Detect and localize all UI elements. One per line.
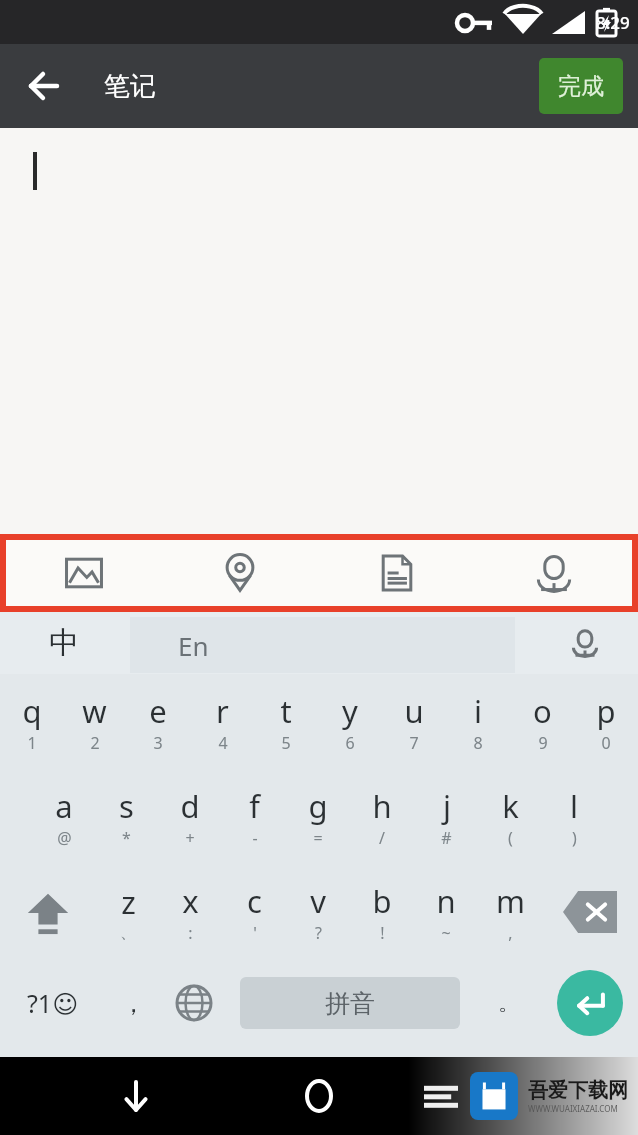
button[interactable]: z bbox=[96, 864, 159, 959]
staticText: 6 bbox=[345, 732, 355, 754]
button[interactable]: e bbox=[126, 674, 190, 769]
staticText: g bbox=[308, 785, 328, 827]
button[interactable]: Insert image bbox=[6, 540, 162, 606]
staticText: 0 bbox=[601, 732, 611, 754]
button[interactable]: 。 bbox=[478, 959, 540, 1047]
staticText: ! bbox=[380, 922, 385, 944]
staticText: d bbox=[180, 785, 200, 827]
staticText: ? bbox=[315, 922, 322, 944]
staticText: + bbox=[185, 827, 195, 849]
staticText: 。 bbox=[498, 989, 520, 1017]
staticText: w bbox=[82, 690, 107, 732]
staticText: v bbox=[310, 880, 326, 922]
staticText: 拼音 bbox=[325, 988, 375, 1019]
staticText: m bbox=[496, 880, 525, 922]
button[interactable]: m bbox=[478, 864, 542, 959]
staticText: n bbox=[436, 880, 456, 922]
button[interactable]: ， bbox=[98, 959, 168, 1047]
staticText: t bbox=[280, 690, 292, 732]
staticText: ~ bbox=[441, 922, 451, 944]
staticText: h bbox=[372, 785, 392, 827]
button[interactable]: Voice input bbox=[475, 540, 632, 606]
button[interactable]: Voice input bbox=[560, 618, 610, 668]
staticText: r bbox=[216, 690, 229, 732]
staticText: b bbox=[372, 880, 392, 922]
button[interactable]: n bbox=[414, 864, 478, 959]
button[interactable]: u bbox=[382, 674, 446, 769]
staticText: ?1☺ bbox=[27, 986, 79, 1020]
button[interactable]: Insert location bbox=[162, 540, 318, 606]
button[interactable]: 完成 bbox=[539, 58, 623, 114]
button[interactable]: g bbox=[286, 769, 350, 864]
staticText: / bbox=[379, 827, 385, 849]
staticText: i bbox=[474, 690, 482, 732]
button[interactable]: Hide keyboard bbox=[108, 1068, 164, 1124]
button[interactable]: Change keyboard bbox=[158, 959, 230, 1047]
button[interactable]: o bbox=[510, 674, 574, 769]
staticText: f bbox=[249, 785, 260, 827]
staticText: WWW.WUAIXIAZAI.COM bbox=[528, 1103, 618, 1114]
staticText: a bbox=[55, 785, 73, 827]
button[interactable]: Back bbox=[16, 60, 68, 112]
button[interactable]: En bbox=[130, 617, 515, 673]
staticText: En bbox=[178, 628, 209, 663]
button[interactable]: k bbox=[478, 769, 542, 864]
staticText: 8:29 bbox=[596, 11, 630, 34]
button[interactable]: l bbox=[542, 769, 606, 864]
staticText: - bbox=[252, 827, 258, 849]
staticText: 2 bbox=[90, 732, 100, 754]
button[interactable]: 拼音 bbox=[240, 977, 460, 1029]
staticText: 3 bbox=[153, 732, 163, 754]
button[interactable]: j bbox=[414, 769, 478, 864]
button[interactable]: w bbox=[63, 674, 126, 769]
staticText: y bbox=[342, 690, 358, 732]
staticText: 、 bbox=[120, 923, 136, 943]
button[interactable]: h bbox=[350, 769, 414, 864]
staticText: o bbox=[533, 690, 552, 732]
staticText: 5 bbox=[281, 732, 291, 754]
button[interactable]: v bbox=[286, 864, 350, 959]
button[interactable]: Enter bbox=[557, 970, 623, 1036]
staticText: k bbox=[502, 785, 519, 827]
button[interactable]: q bbox=[0, 674, 63, 769]
button[interactable]: d bbox=[158, 769, 222, 864]
button[interactable]: i bbox=[446, 674, 510, 769]
staticText: 笔记 bbox=[104, 70, 156, 103]
staticText: s bbox=[119, 785, 134, 827]
staticText: 1 bbox=[27, 732, 37, 754]
staticText: * bbox=[122, 827, 131, 849]
staticText: ( bbox=[508, 827, 513, 849]
staticText: c bbox=[247, 880, 262, 922]
staticText: 7 bbox=[409, 732, 419, 754]
button[interactable]: p bbox=[574, 674, 638, 769]
staticText: , bbox=[508, 922, 513, 944]
button[interactable]: b bbox=[350, 864, 414, 959]
staticText: 4 bbox=[218, 732, 228, 754]
button[interactable]: r bbox=[190, 674, 254, 769]
button[interactable]: Insert document bbox=[318, 540, 475, 606]
staticText: # bbox=[441, 827, 452, 849]
button[interactable]: y bbox=[318, 674, 382, 769]
staticText: ' bbox=[253, 922, 257, 944]
staticText: 中 bbox=[49, 624, 79, 662]
button[interactable]: Backspace bbox=[542, 864, 638, 959]
staticText: : bbox=[188, 922, 193, 944]
button[interactable]: c bbox=[222, 864, 286, 959]
button[interactable]: Home bbox=[291, 1068, 347, 1124]
button[interactable]: f bbox=[222, 769, 286, 864]
staticText: e bbox=[149, 690, 167, 732]
staticText: ， bbox=[121, 988, 146, 1019]
button[interactable]: x bbox=[159, 864, 222, 959]
staticText: ) bbox=[572, 827, 577, 849]
staticText: j bbox=[443, 785, 451, 827]
button[interactable]: Switch language bbox=[36, 615, 92, 671]
staticText: p bbox=[596, 690, 616, 732]
button[interactable]: t bbox=[254, 674, 318, 769]
button[interactable]: Shift bbox=[0, 864, 96, 959]
staticText: = bbox=[313, 827, 323, 849]
staticText: 吾爱下载网 bbox=[528, 1078, 628, 1103]
button[interactable]: ?1☺ bbox=[8, 959, 98, 1047]
button[interactable]: s bbox=[95, 769, 158, 864]
button[interactable]: a bbox=[32, 769, 95, 864]
staticText: 8 bbox=[473, 732, 483, 754]
